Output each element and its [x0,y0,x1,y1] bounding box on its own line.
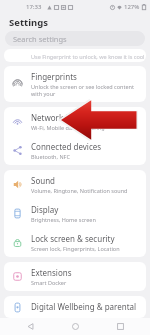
button[interactable]: Search settings [5,31,145,46]
button[interactable]: Connected devices [4,136,146,165]
staticText: Network & internet [31,112,104,123]
staticText: Bluetooth, NFC [31,153,70,160]
button[interactable]: Back [15,318,45,335]
staticText: Wi-Fi, Mobile data, Tethering [31,124,105,131]
button[interactable]: Home [60,318,90,335]
staticText: Fingerprints [31,71,77,82]
staticText: 17:33 [26,3,42,11]
button[interactable]: Extensions [4,262,146,291]
staticText: Unlock the screen or see locked content … [31,83,140,97]
staticText: Use Fingerprint to unlock, we know it is… [31,53,145,60]
staticText: Lock screen & security [31,233,115,244]
staticText: Brightness, Home screen [31,216,96,223]
staticText: Screen lock, Fingerprints, Location [31,245,120,252]
button[interactable]: Display [4,199,146,228]
button[interactable]: Sound [4,170,146,199]
staticText: Settings [9,16,48,29]
button[interactable]: Use Fingerprint to unlock, we know it is… [4,49,146,62]
staticText: Volume, Ringtone, Notification sound [31,187,128,194]
button[interactable]: Digital Wellbeing & parental [4,296,146,318]
staticText: 127% [124,3,140,11]
button[interactable]: Fingerprints [4,66,146,102]
staticText: Smart Docker [31,279,67,286]
staticText: Display [31,204,59,215]
button[interactable]: Network & internet [4,107,146,136]
button[interactable]: Recent apps [105,318,135,335]
staticText: Connected devices [31,141,102,152]
staticText: Search settings [13,34,67,44]
staticText: Extensions [31,267,72,278]
staticText: Digital Wellbeing & parental [31,301,137,312]
staticText: Sound [31,175,56,186]
button[interactable]: Lock screen & security [4,228,146,257]
